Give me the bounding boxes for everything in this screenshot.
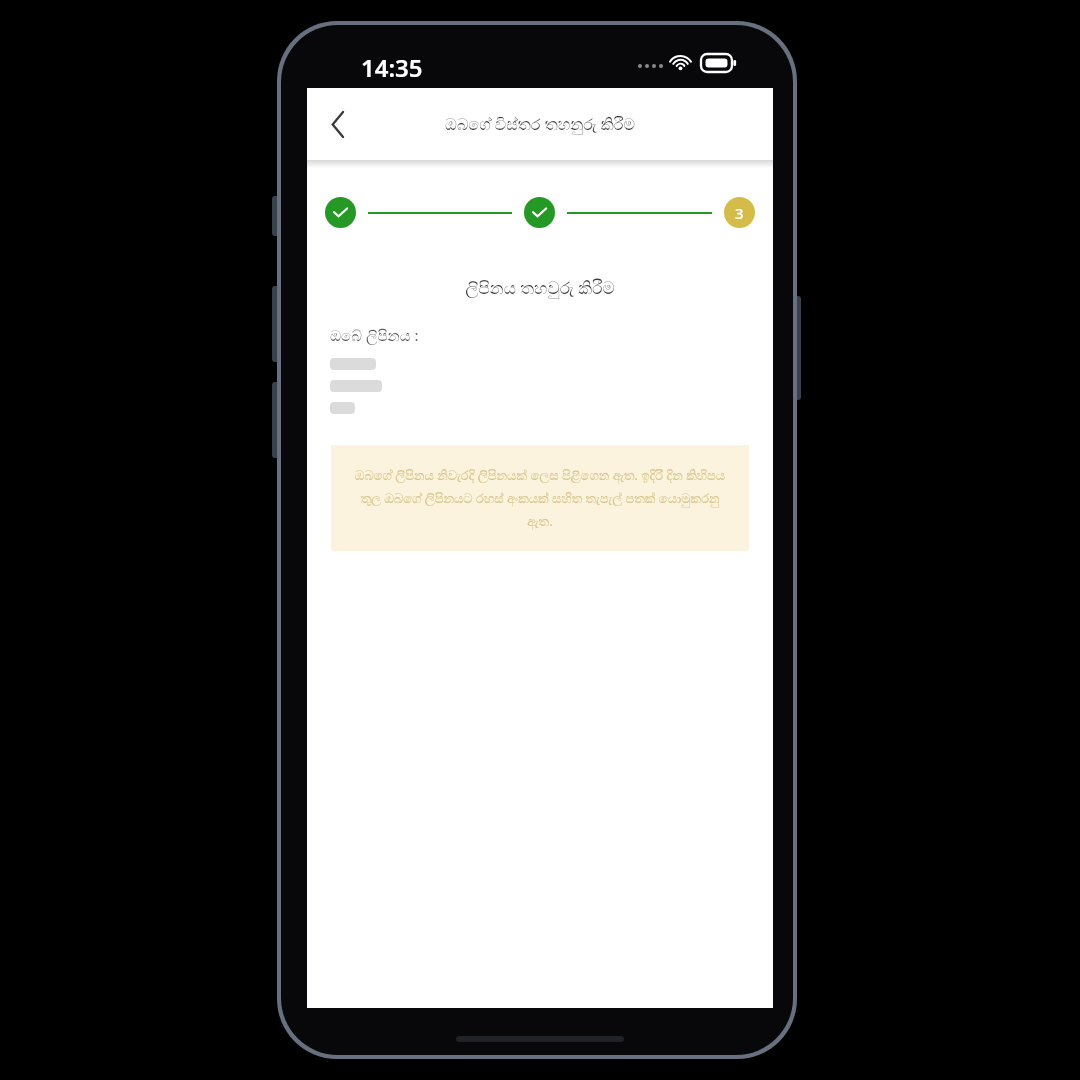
staticText: ලිපිනය තහවුරු කිරීම xyxy=(307,276,773,299)
button[interactable]: Step 3 xyxy=(724,197,755,228)
button[interactable]: Step 2 done xyxy=(524,197,555,228)
staticText: 14:35 xyxy=(361,51,423,84)
button[interactable]: Step 1 done xyxy=(325,197,356,228)
staticText: ඔබගේ විස්තර තහනුරු කිරීම xyxy=(445,113,635,135)
staticText: ඔබේ ලිපිනය : xyxy=(330,325,419,345)
button[interactable]: Back xyxy=(315,101,361,147)
staticText: ඔබගේ ලිපිනය නිවැරදි ලිපිනයක් ලෙස පිළිගෙන… xyxy=(347,466,733,530)
staticText: 3 xyxy=(735,203,744,223)
